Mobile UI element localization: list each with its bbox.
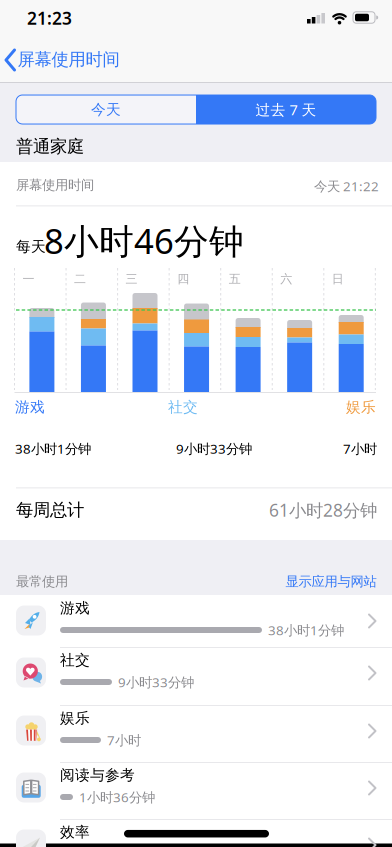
- staticText: 1小时36分钟: [79, 788, 155, 806]
- button[interactable]: 显示应用与网站: [285, 573, 376, 590]
- button[interactable]: 阅读与参考: [0, 762, 392, 819]
- staticText: 9小时33分钟: [118, 673, 194, 691]
- staticText: 7小时: [107, 731, 141, 749]
- staticText: 显示应用与网站: [285, 573, 376, 590]
- staticText: 今天 21:22: [314, 177, 379, 195]
- staticText: 屏幕使用时间: [16, 177, 94, 193]
- button[interactable]: 返回屏幕使用时间: [0, 38, 160, 82]
- staticText: 日: [332, 272, 344, 286]
- staticText: 每周总计: [16, 499, 84, 521]
- button[interactable]: 过去 7 天: [196, 95, 376, 124]
- staticText: 效率: [60, 823, 90, 841]
- staticText: 游戏: [60, 599, 90, 617]
- staticText: 四: [177, 272, 189, 286]
- staticText: 社交: [60, 651, 90, 669]
- staticText: 今天: [91, 100, 121, 118]
- staticText: 六: [280, 272, 292, 286]
- button[interactable]: 效率: [0, 819, 392, 847]
- button[interactable]: 社交: [0, 647, 392, 704]
- staticText: 61小时28分钟: [269, 498, 377, 521]
- staticText: 娱乐: [60, 709, 90, 727]
- staticText: 二: [74, 272, 86, 286]
- staticText: 38小时1分钟: [15, 440, 91, 457]
- button[interactable]: 今天: [16, 95, 196, 124]
- button[interactable]: 娱乐: [0, 705, 392, 762]
- staticText: 21:23: [27, 6, 72, 29]
- staticText: 社交: [168, 398, 198, 416]
- button[interactable]: 游戏: [0, 595, 392, 647]
- staticText: 过去 7 天: [255, 100, 316, 119]
- staticText: 普通家庭: [16, 136, 84, 157]
- staticText: 三: [126, 272, 138, 286]
- staticText: 五: [229, 272, 241, 286]
- staticText: 一: [22, 272, 34, 286]
- staticText: 屏幕使用时间: [17, 49, 119, 70]
- staticText: 娱乐: [346, 398, 376, 416]
- staticText: 游戏: [15, 398, 45, 416]
- staticText: 阅读与参考: [60, 766, 135, 784]
- staticText: 38小时1分钟: [268, 621, 344, 639]
- staticText: 7小时: [343, 440, 377, 457]
- staticText: 最常使用: [16, 573, 68, 590]
- staticText: 8小时46分钟: [44, 217, 244, 263]
- staticText: 9小时33分钟: [176, 440, 252, 457]
- staticText: 每天: [16, 237, 46, 255]
